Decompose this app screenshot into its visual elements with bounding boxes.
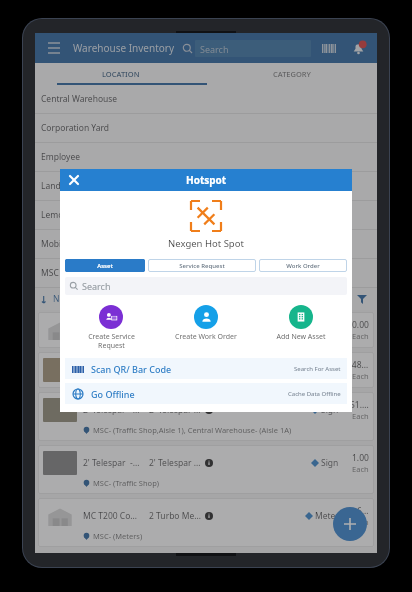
staticText: Central Warehouse xyxy=(41,93,118,105)
staticText: Landscape xyxy=(41,180,84,192)
button[interactable]: Add xyxy=(333,507,367,541)
staticText xyxy=(149,364,201,376)
staticText: 6… xyxy=(357,505,369,517)
button[interactable]: Add New Asset xyxy=(253,303,348,344)
staticText: Service Request xyxy=(179,262,225,270)
button[interactable]: 0.00 xyxy=(38,312,374,348)
staticText: Create Service Request xyxy=(88,332,135,350)
button[interactable]: Info xyxy=(204,458,214,468)
staticText: Employee xyxy=(41,151,80,163)
button[interactable]: 2' Telespar -… xyxy=(38,445,374,494)
staticText: Asset xyxy=(97,262,113,270)
staticText: Hotspot xyxy=(186,173,227,187)
button[interactable]: Scan barcode xyxy=(319,38,339,58)
button[interactable]: Create Work Order xyxy=(158,303,253,344)
button[interactable]: Central Warehouse xyxy=(35,85,377,113)
button[interactable]: Scan QR/ Bar Code xyxy=(65,358,347,379)
staticText: Mobile xyxy=(41,238,69,250)
staticText: 2' Telespar -… xyxy=(83,457,145,469)
button[interactable]: Corporation Yard xyxy=(35,114,377,142)
button[interactable]: 148… xyxy=(38,352,374,388)
staticText: Meter xyxy=(315,510,339,522)
button[interactable]: MSC xyxy=(35,259,377,287)
staticText: MSC- (Traffic Shop) xyxy=(93,478,160,488)
staticText: MSC xyxy=(41,267,59,279)
staticText: 1.00 xyxy=(352,452,369,464)
staticText: Nexgen Hot Spot xyxy=(168,237,244,250)
button[interactable]: Asset xyxy=(65,259,145,272)
staticText: LOCATION xyxy=(102,69,140,79)
button[interactable]: Work Order xyxy=(259,259,347,272)
staticText: Each xyxy=(352,331,369,341)
button[interactable]: Go Offline xyxy=(65,383,347,404)
staticText: CATEGORY xyxy=(273,69,311,79)
staticText: Add New Asset xyxy=(276,332,326,342)
staticText: Create Work Order xyxy=(175,332,237,342)
button[interactable]: Menu xyxy=(43,37,65,59)
button[interactable]: Info xyxy=(204,405,214,415)
staticText: Lemoore W xyxy=(41,209,87,221)
button[interactable]: Search xyxy=(195,40,311,57)
staticText: 2' Telespar -… xyxy=(83,404,145,416)
button[interactable]: Close xyxy=(66,172,82,188)
button[interactable]: Info xyxy=(204,511,214,521)
staticText: Each xyxy=(352,464,369,474)
staticText: Warehouse Inventory xyxy=(73,41,175,55)
button[interactable]: Employee xyxy=(35,143,377,171)
staticText: Each xyxy=(352,371,369,381)
button[interactable]: Notifications xyxy=(347,37,369,59)
staticText: Cache Data Offline xyxy=(288,390,341,398)
staticText: Sign xyxy=(321,457,339,469)
staticText: Search xyxy=(82,280,111,292)
staticText: Name xyxy=(53,293,77,305)
staticText: Scan QR/ Bar Code xyxy=(91,363,172,375)
staticText: 2' Telespar -… xyxy=(149,457,201,469)
staticText: Corporation Yard xyxy=(41,122,110,134)
staticText: Search xyxy=(200,43,229,55)
button[interactable]: CATEGORY xyxy=(206,63,377,85)
staticText xyxy=(83,364,145,376)
button[interactable]: Lemoore W xyxy=(35,201,377,229)
staticText: 2 Turbo Met… xyxy=(149,510,201,522)
button[interactable]: MC T200 Co… xyxy=(38,498,374,547)
staticText: Search For Asset xyxy=(294,365,341,373)
staticText: 51…. xyxy=(350,399,369,411)
staticText: MSC- (Meters) xyxy=(93,531,143,541)
staticText: Sign xyxy=(321,404,339,416)
button[interactable]: Landscape xyxy=(35,172,377,200)
staticText: MSC- (Traffic Shop,Aisle 1), Central War… xyxy=(93,425,292,435)
staticText: Each xyxy=(352,517,369,527)
button[interactable]: Service Request xyxy=(148,259,256,272)
staticText xyxy=(83,324,145,336)
button[interactable]: Name xyxy=(41,293,77,305)
staticText: MC T200 Co… xyxy=(83,510,145,522)
button[interactable]: 2' Telespar -… xyxy=(38,392,374,441)
button[interactable]: Create Service Request xyxy=(64,303,158,352)
staticText: 0.00 xyxy=(352,319,369,331)
staticText: 148… xyxy=(347,359,369,371)
staticText: 2' Telespar -… xyxy=(149,404,201,416)
button[interactable]: Search xyxy=(65,277,347,295)
button[interactable]: Mobile xyxy=(35,230,377,258)
button[interactable]: Refresh xyxy=(327,290,345,308)
staticText xyxy=(149,324,201,336)
button[interactable]: LOCATION xyxy=(35,63,206,85)
staticText: Each xyxy=(352,411,369,421)
button[interactable]: Filter xyxy=(353,290,371,308)
staticText: Go Offline xyxy=(91,388,135,400)
staticText: Work Order xyxy=(286,262,320,270)
